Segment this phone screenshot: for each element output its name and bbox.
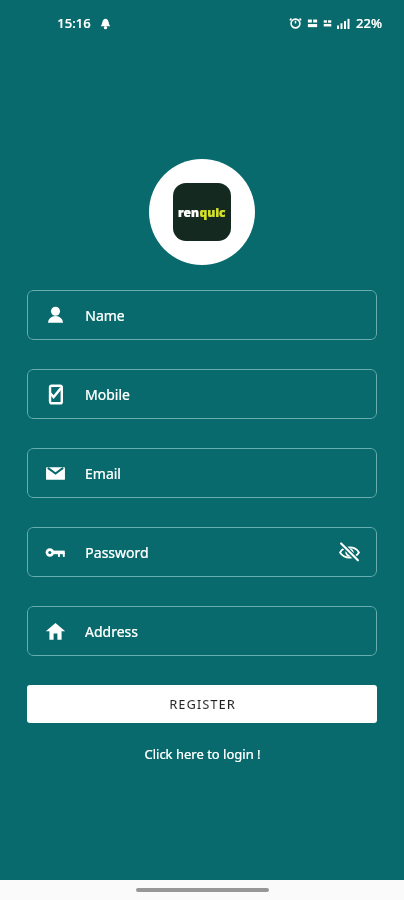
staticText: Password [85,543,149,562]
button[interactable]: REGISTER [27,685,377,723]
staticText: Address [85,622,138,641]
button[interactable]: Name [27,290,377,340]
staticText: Mobile [85,385,130,404]
staticText: ren [178,204,199,220]
button[interactable]: Toggle password visibility [335,538,363,566]
button[interactable]: Mobile [27,369,377,419]
staticText: REGISTER [169,695,236,713]
button[interactable]: Address [27,606,377,656]
staticText: quic [199,204,226,220]
staticText: 15:16 [57,14,91,32]
staticText: Email [85,464,121,483]
staticText: Click here to login ! [144,745,261,763]
button[interactable]: Password [27,527,377,577]
button[interactable]: Click here to login ! [0,745,404,763]
button[interactable]: Email [27,448,377,498]
staticText: Name [85,306,125,325]
staticText: 22% [356,14,382,32]
